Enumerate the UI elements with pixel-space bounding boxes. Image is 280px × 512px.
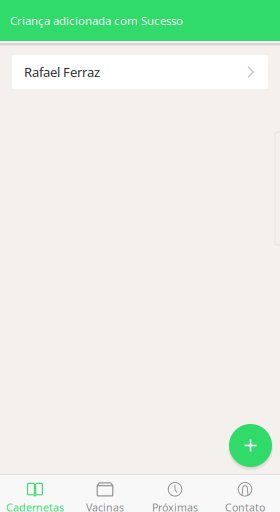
- button[interactable]: Adicionar criança: [229, 424, 272, 467]
- staticText: Rafael Ferraz: [24, 63, 100, 81]
- staticText: Vacinas: [86, 500, 124, 512]
- button[interactable]: Contato: [210, 482, 280, 512]
- button[interactable]: Vacinas: [70, 482, 140, 512]
- staticText: Criança adicionada com Sucesso: [10, 13, 183, 28]
- button[interactable]: Cadernetas: [0, 482, 70, 512]
- staticText: Cadernetas: [6, 500, 64, 512]
- button[interactable]: Rafael Ferraz: [12, 55, 268, 89]
- staticText: Contato: [225, 500, 265, 512]
- staticText: Próximas: [152, 500, 198, 512]
- button[interactable]: Próximas: [140, 482, 210, 512]
